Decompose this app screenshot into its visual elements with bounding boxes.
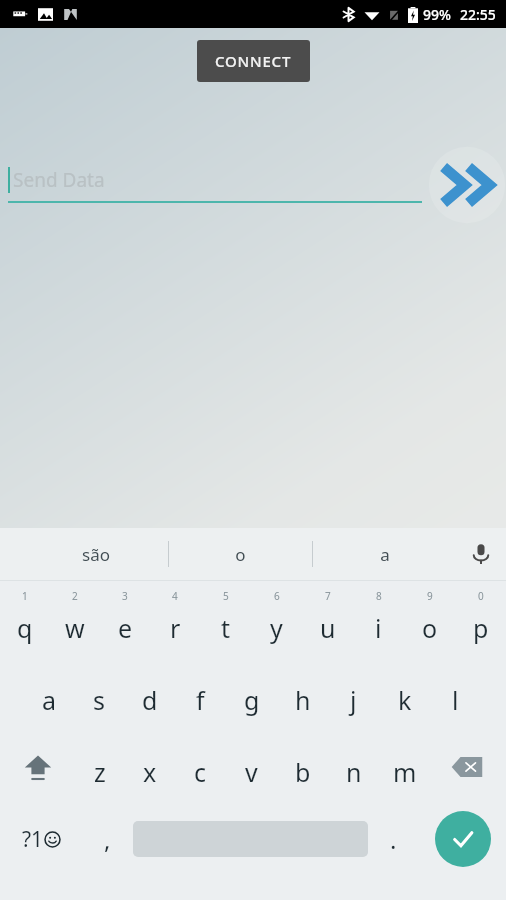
button[interactable]: z xyxy=(75,731,125,803)
button[interactable]: , xyxy=(82,803,133,875)
staticText: o xyxy=(235,543,246,566)
staticText: a xyxy=(42,683,57,717)
button[interactable]: 4 xyxy=(150,587,200,659)
button[interactable]: 9 xyxy=(404,587,455,659)
button[interactable]: 6 xyxy=(251,587,302,659)
button[interactable]: m xyxy=(379,731,430,803)
button[interactable]: n xyxy=(328,731,379,803)
staticText: 4 xyxy=(172,589,178,603)
button[interactable]: a xyxy=(313,528,456,580)
staticText: 5 xyxy=(223,589,229,603)
button[interactable]: b xyxy=(277,731,328,803)
staticText: l xyxy=(452,683,459,717)
staticText: são xyxy=(82,543,110,566)
staticText: z xyxy=(94,755,106,789)
staticText: 2 xyxy=(72,589,78,603)
button[interactable]: Send xyxy=(428,146,506,224)
staticText: 1 xyxy=(22,589,28,603)
staticText: e xyxy=(118,611,133,645)
staticText: x xyxy=(143,755,157,789)
staticText: q xyxy=(17,611,33,645)
staticText: 22:55 xyxy=(460,5,496,24)
button[interactable]: a xyxy=(24,659,74,731)
button[interactable]: o xyxy=(169,528,312,580)
staticText: , xyxy=(104,823,111,856)
staticText: 3 xyxy=(122,589,128,603)
button[interactable]: Enter xyxy=(419,803,506,875)
staticText: f xyxy=(196,683,205,717)
staticText: m xyxy=(393,755,417,789)
staticText: 9 xyxy=(427,589,433,603)
button[interactable]: k xyxy=(379,659,430,731)
staticText: b xyxy=(295,755,311,789)
button[interactable]: v xyxy=(226,731,277,803)
staticText: 99% xyxy=(423,5,451,24)
staticText: CONNECT xyxy=(215,51,292,71)
button[interactable]: h xyxy=(277,659,328,731)
button[interactable]: d xyxy=(124,659,175,731)
button[interactable]: Voice input xyxy=(456,528,506,580)
staticText: g xyxy=(244,683,260,717)
staticText: 0 xyxy=(478,589,484,603)
button[interactable]: 1 xyxy=(0,587,50,659)
staticText: p xyxy=(473,611,489,645)
staticText: k xyxy=(398,683,412,717)
staticText: Send Data xyxy=(13,167,105,193)
button[interactable]: Backspace xyxy=(430,731,506,803)
button[interactable]: c xyxy=(175,731,226,803)
staticText: . xyxy=(390,823,397,856)
staticText: y xyxy=(270,611,283,645)
button[interactable]: 2 xyxy=(50,587,100,659)
button[interactable]: j xyxy=(328,659,379,731)
button[interactable]: l xyxy=(430,659,481,731)
staticText: n xyxy=(346,755,362,789)
button[interactable]: são xyxy=(24,528,168,580)
button[interactable]: ?1 xyxy=(0,803,82,875)
button[interactable]: Shift xyxy=(0,731,75,803)
staticText: t xyxy=(221,611,231,645)
staticText: o xyxy=(422,611,438,645)
button[interactable]: 5 xyxy=(200,587,251,659)
staticText: 7 xyxy=(325,589,331,603)
staticText: s xyxy=(93,683,105,717)
button[interactable]: 3 xyxy=(100,587,150,659)
button[interactable]: x xyxy=(125,731,175,803)
staticText: d xyxy=(142,683,158,717)
staticText: a xyxy=(380,543,390,566)
button[interactable]: 0 xyxy=(455,587,506,659)
staticText: u xyxy=(320,611,336,645)
button[interactable]: . xyxy=(368,803,419,875)
staticText: c xyxy=(194,755,207,789)
staticText: h xyxy=(295,683,311,717)
staticText: r xyxy=(170,611,181,645)
staticText: w xyxy=(65,611,85,645)
button[interactable]: g xyxy=(226,659,277,731)
staticText: 8 xyxy=(376,589,382,603)
staticText: v xyxy=(245,755,258,789)
button[interactable]: s xyxy=(74,659,124,731)
staticText: i xyxy=(375,611,382,645)
button[interactable]: 7 xyxy=(302,587,353,659)
staticText: j xyxy=(350,683,357,717)
button[interactable]: f xyxy=(175,659,226,731)
button[interactable]: Send Data xyxy=(8,167,422,203)
staticText: 6 xyxy=(274,589,280,603)
button[interactable]: 8 xyxy=(353,587,404,659)
staticText: ?1 xyxy=(22,825,44,854)
button[interactable]: CONNECT xyxy=(197,40,310,82)
